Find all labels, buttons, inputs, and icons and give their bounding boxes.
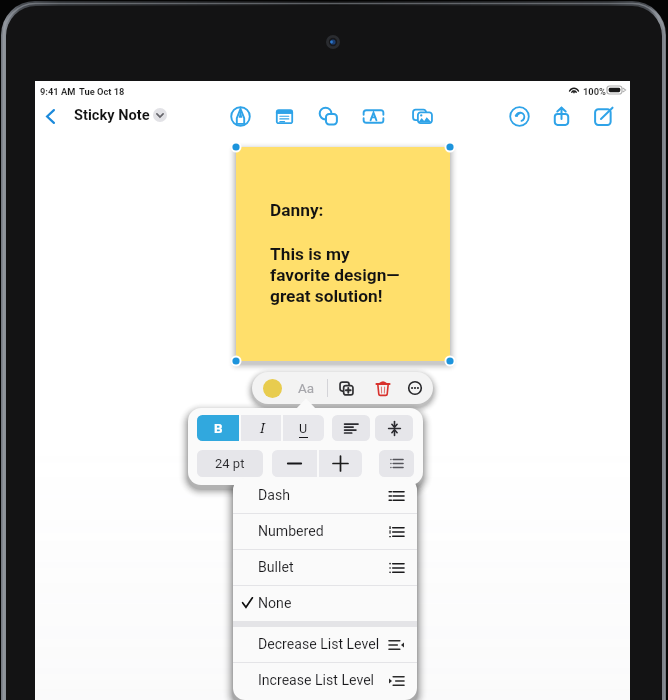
staticText: Dash (258, 487, 290, 504)
staticText: Decrease List Level (258, 636, 380, 653)
button[interactable] (272, 450, 316, 477)
button[interactable]: Compose (588, 101, 618, 132)
staticText: Tue Oct 18 (79, 86, 125, 97)
staticText: U (299, 421, 308, 436)
button[interactable]: None (233, 586, 417, 621)
button[interactable]: B (197, 415, 239, 441)
button[interactable]: Duplicate (334, 375, 360, 401)
staticText: Bullet (258, 559, 294, 576)
button[interactable]: Increase List Level (233, 663, 417, 698)
button[interactable]: I (241, 415, 283, 441)
button[interactable]: 24 pt (197, 450, 263, 477)
button[interactable] (375, 415, 413, 441)
button[interactable]: Back (38, 101, 62, 132)
staticText: B (214, 420, 223, 436)
button[interactable] (332, 415, 370, 441)
staticText: I (260, 419, 265, 437)
button[interactable]: Aa (290, 372, 322, 404)
staticText: 9:41 AM (40, 86, 76, 97)
button[interactable]: Delete (370, 375, 396, 401)
staticText: None (258, 595, 292, 612)
staticText: Increase List Level (258, 672, 375, 689)
button[interactable]: Sticky Note (74, 99, 167, 130)
button[interactable]: Media (407, 101, 437, 132)
button[interactable]: Decrease List Level (233, 627, 417, 662)
button[interactable]: Undo (504, 101, 534, 132)
button[interactable] (379, 450, 414, 477)
button[interactable] (318, 450, 362, 477)
staticText: Numbered (258, 523, 324, 540)
button[interactable]: Draw (225, 101, 255, 132)
staticText: 100% (583, 86, 606, 97)
button[interactable]: Bullet (233, 550, 417, 585)
staticText: This is my favorite design— great soluti… (270, 244, 400, 306)
staticText: 24 pt (215, 456, 245, 471)
button[interactable]: Shapes (313, 101, 343, 132)
button[interactable]: Text box (358, 101, 388, 132)
button[interactable]: Share (546, 101, 576, 132)
button[interactable]: More (402, 375, 428, 401)
staticText: Sticky Note (74, 106, 150, 123)
button[interactable]: Sticky note (269, 101, 299, 132)
button[interactable]: U (282, 415, 324, 441)
button[interactable]: Dash (233, 478, 417, 513)
button[interactable]: Numbered (233, 514, 417, 549)
button[interactable]: Color (263, 379, 282, 398)
staticText: Aa (298, 380, 315, 396)
staticText: Danny: (270, 200, 324, 220)
